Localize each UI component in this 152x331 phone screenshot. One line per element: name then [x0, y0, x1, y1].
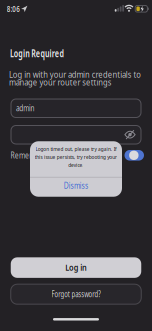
staticText: Log in: [64, 262, 87, 273]
staticText: Login Required: [10, 47, 81, 59]
staticText: device.: [65, 161, 87, 170]
staticText: Dismiss: [61, 180, 90, 191]
staticText: Log in with your admin credentials to: [9, 69, 148, 80]
staticText: manage your router settings: [9, 77, 117, 88]
staticText: Logon timed out, please try again. If: [19, 143, 133, 152]
staticText: Remember me?: [10, 150, 69, 161]
staticText: admin: [16, 103, 39, 113]
button[interactable]: Dismiss: [30, 176, 122, 195]
button[interactable]: Remember me: [124, 150, 144, 161]
button[interactable]: Log in: [11, 257, 141, 278]
staticText: 8:06: [5, 4, 22, 14]
button[interactable]: Forgot password?: [11, 284, 141, 304]
staticText: Forgot password?: [43, 289, 109, 299]
button[interactable]: Show password: [124, 130, 136, 140]
staticText: this issue persists, try rebooting your: [18, 152, 134, 161]
